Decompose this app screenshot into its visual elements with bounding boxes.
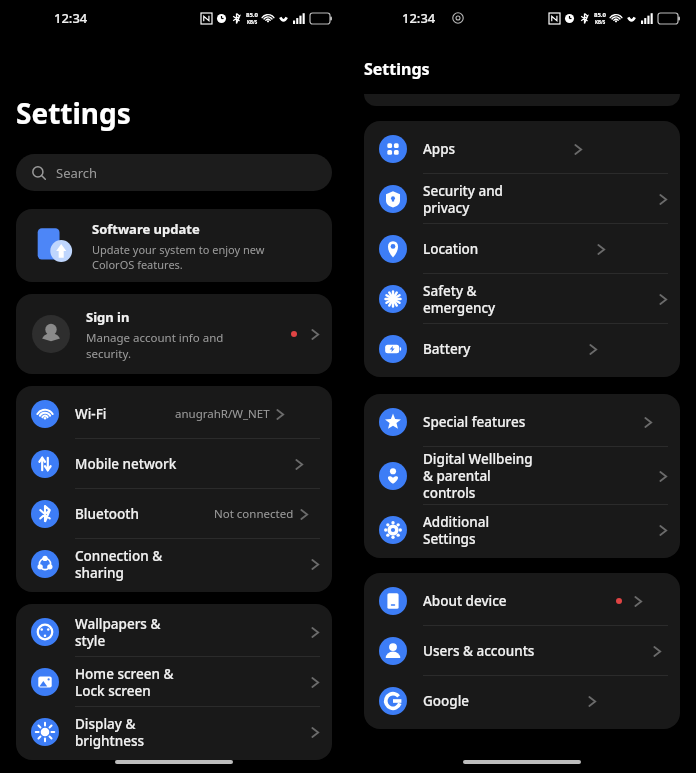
button[interactable]: Connection & sharing	[16, 539, 332, 589]
staticText: Connection & sharing	[75, 547, 193, 582]
staticText: 85.0	[594, 11, 606, 19]
button[interactable]: About device	[364, 576, 680, 626]
button[interactable]: Location	[364, 224, 680, 274]
button[interactable]: Software update	[16, 209, 332, 282]
button[interactable]: Bluetooth	[16, 489, 332, 539]
staticText: Update your system to enjoy new ColorOS …	[92, 242, 265, 272]
button[interactable]: Home screen & Lock screen	[16, 657, 332, 707]
staticText: Sign in	[86, 308, 130, 326]
staticText: Special features	[423, 413, 526, 431]
staticText: 85.0	[246, 11, 258, 19]
staticText: Settings	[364, 58, 430, 80]
staticText: Wi-Fi	[75, 405, 107, 423]
staticText: Bluetooth	[75, 505, 139, 523]
button[interactable]: Security and privacy	[364, 174, 680, 224]
button[interactable]: Safety & emergency	[364, 274, 680, 324]
staticText: Mobile network	[75, 455, 177, 473]
staticText: Battery	[423, 340, 471, 358]
staticText: Security and privacy	[423, 182, 541, 217]
staticText: Software update	[92, 220, 200, 238]
staticText: Home screen & Lock screen	[75, 665, 193, 700]
staticText: About device	[423, 592, 507, 610]
button[interactable]: Digital Wellbeing & parental controls	[364, 447, 680, 505]
staticText: Apps	[423, 140, 456, 158]
staticText: Location	[423, 240, 479, 258]
staticText: Safety & emergency	[423, 282, 541, 317]
staticText: Search	[56, 164, 98, 182]
staticText: Users & accounts	[423, 642, 535, 660]
staticText: Digital Wellbeing & parental controls	[423, 450, 541, 502]
button[interactable]: Search	[16, 154, 332, 191]
staticText: 12:34	[54, 9, 88, 27]
button[interactable]: Sign in	[16, 294, 332, 374]
button[interactable]: Display & brightness	[16, 707, 332, 757]
button[interactable]: Apps	[364, 124, 680, 174]
staticText: 12:34	[402, 9, 436, 27]
button[interactable]: Google	[364, 676, 680, 726]
button[interactable]: Additional Settings	[364, 505, 680, 555]
staticText: Manage account info and security.	[86, 330, 224, 361]
staticText: KB/S	[247, 19, 258, 25]
staticText: Settings	[16, 94, 131, 132]
staticText: Google	[423, 692, 470, 710]
staticText: anugrahR/W_NET	[175, 406, 270, 422]
button[interactable]: Wi-Fi	[16, 389, 332, 439]
staticText: Additional Settings	[423, 513, 541, 548]
staticText: KB/S	[595, 19, 606, 25]
button[interactable]: Mobile network	[16, 439, 332, 489]
button[interactable]: Special features	[364, 397, 680, 447]
button[interactable]: Battery	[364, 324, 680, 374]
button[interactable]: Users & accounts	[364, 626, 680, 676]
button[interactable]: Wallpapers & style	[16, 607, 332, 657]
staticText: Display & brightness	[75, 715, 193, 750]
staticText: Not connected	[214, 506, 294, 522]
staticText: Wallpapers & style	[75, 615, 193, 650]
